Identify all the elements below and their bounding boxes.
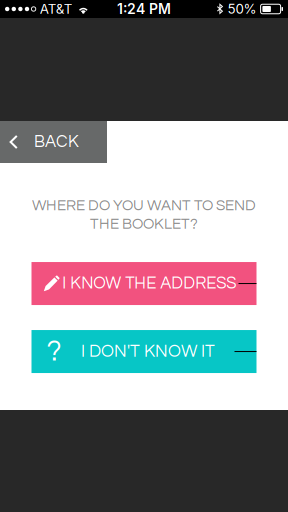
button[interactable]: BACK — [0, 121, 107, 163]
staticText: BACK — [34, 133, 79, 151]
staticText: ? — [46, 336, 61, 367]
staticText: I KNOW THE ADDRESS — [62, 275, 236, 292]
staticText: WHERE DO YOU WANT TO SEND — [32, 198, 256, 213]
staticText: AT&T — [40, 1, 73, 17]
staticText: I DON'T KNOW IT — [81, 343, 215, 360]
button[interactable]: I KNOW THE ADDRESS — [31, 262, 256, 305]
button[interactable]: ? — [31, 330, 256, 373]
staticText: THE BOOKLET? — [90, 216, 198, 232]
staticText: 50% — [228, 1, 257, 17]
staticText: 1:24 PM — [117, 0, 171, 17]
